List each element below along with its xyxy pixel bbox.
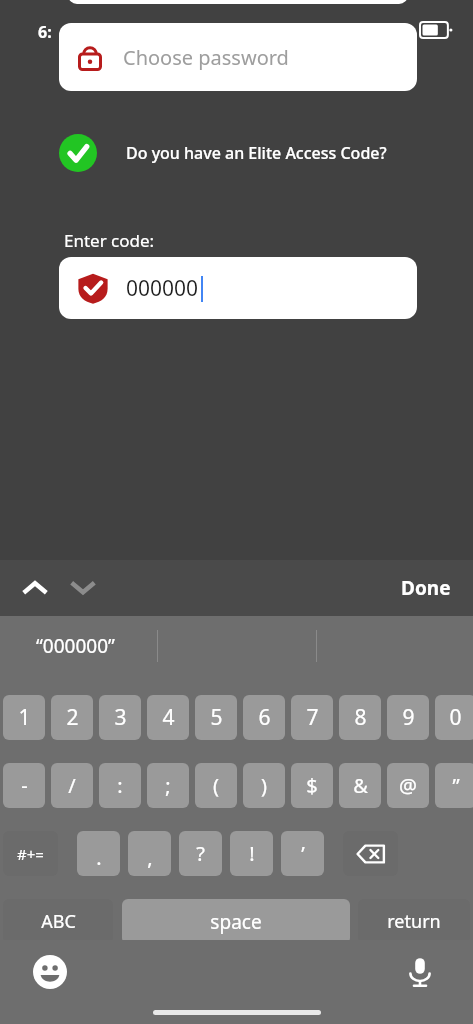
button[interactable]: ” [435,763,473,808]
staticText: - [21,772,28,799]
staticText: : [117,772,123,799]
staticText: ; [165,772,171,799]
button[interactable]: ) [243,763,285,808]
staticText: ” [452,772,460,799]
button[interactable]: - [3,763,45,808]
staticText: Choose password [123,44,289,71]
staticText: ) [261,772,267,799]
button[interactable]: Choose password [59,23,417,91]
button[interactable]: 3 [99,695,141,740]
button[interactable]: 0 [435,695,473,740]
staticText: 5 [210,703,223,732]
staticText: #+= [17,844,44,864]
staticText: 1 [18,703,31,732]
button[interactable]: 5 [195,695,237,740]
staticText: 8 [354,703,367,732]
staticText: / [68,772,76,799]
button[interactable]: Done [393,565,459,611]
staticText: Done [401,575,451,601]
button[interactable]: 4 [147,695,189,740]
button[interactable]: ( [195,763,237,808]
button[interactable]: space [122,899,350,944]
staticText: ? [196,840,205,867]
staticText: 2 [66,703,79,732]
button[interactable]: ABC [3,899,113,944]
staticText: 6 [258,703,271,732]
button[interactable]: ; [147,763,189,808]
button[interactable]: , [128,831,171,876]
staticText: ( [213,772,219,799]
staticText: 7 [306,703,319,732]
button[interactable]: $ [291,763,333,808]
button[interactable]: Dictation [398,950,442,994]
staticText: ABC [41,909,76,934]
button[interactable]: @ [387,763,429,808]
button[interactable]: 7 [291,695,333,740]
staticText: 0 [449,703,462,732]
button[interactable]: . [77,831,120,876]
staticText: @ [399,772,417,799]
button[interactable]: ! [230,831,273,876]
staticText: space [210,909,262,935]
staticText: 4 [162,703,175,732]
button[interactable]: / [51,763,93,808]
staticText: 6: [38,21,52,43]
button[interactable]: Backspace [343,831,398,876]
button[interactable]: Emoji [28,950,72,994]
staticText: Do you have an Elite Access Code? [126,142,387,164]
staticText: Enter code: [64,229,155,252]
button[interactable]: Do you have an Elite Access Code? [59,130,417,176]
staticText: return [387,909,441,934]
button[interactable]: 6 [243,695,285,740]
staticText: ! [249,840,255,867]
button[interactable]: ’ [281,831,324,876]
staticText: “000000” [36,633,115,659]
button[interactable]: #+= [3,831,58,876]
button[interactable]: Next field [62,560,104,616]
staticText: 000000 [126,274,199,303]
staticText: . [96,844,102,871]
staticText: , [147,844,153,871]
staticText: & [353,772,368,799]
button[interactable]: : [99,763,141,808]
staticText: $ [306,772,318,799]
staticText: 3 [114,703,127,732]
button[interactable]: 000000 [59,257,417,319]
button[interactable]: & [339,763,381,808]
button[interactable]: return [358,899,470,944]
button[interactable]: 2 [51,695,93,740]
button[interactable]: Previous field [14,560,56,616]
button[interactable]: 9 [387,695,429,740]
staticText: 9 [402,703,415,732]
button[interactable]: ? [179,831,222,876]
button[interactable]: 1 [3,695,45,740]
button[interactable]: 8 [339,695,381,740]
staticText: ’ [301,840,305,867]
